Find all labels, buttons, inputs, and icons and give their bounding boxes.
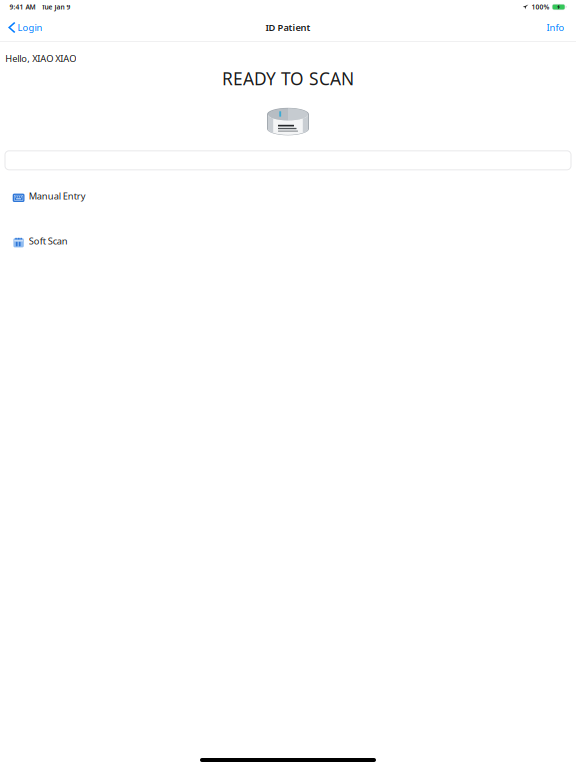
button[interactable]: Manual Entry: [0, 186, 576, 206]
staticText: Hello, XIAO XIAO: [5, 52, 76, 65]
staticText: Login: [18, 21, 43, 34]
staticText: Tue Jan 9: [41, 2, 70, 12]
staticText: 9:41 AM: [9, 2, 35, 12]
staticText: 100%: [531, 2, 549, 12]
staticText: READY TO SCAN: [222, 67, 354, 90]
button[interactable]: Info: [538, 17, 576, 38]
staticText: Manual Entry: [29, 189, 86, 202]
staticText: Info: [546, 21, 564, 34]
button[interactable]: Login: [0, 17, 51, 38]
staticText: Soft Scan: [29, 234, 68, 247]
staticText: ID Patient: [265, 21, 310, 34]
button[interactable]: Soft Scan: [0, 231, 576, 251]
